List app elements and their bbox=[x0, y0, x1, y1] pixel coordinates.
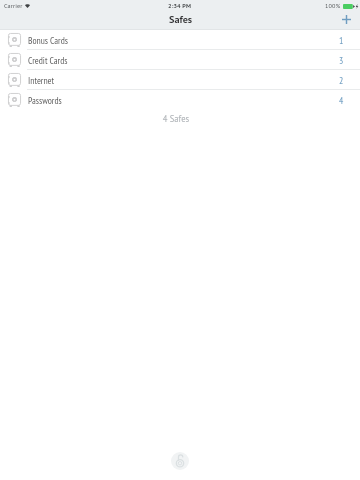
button[interactable]: Credit Cards bbox=[0, 50, 360, 69]
staticText: 4 Safes bbox=[0, 113, 356, 124]
staticText: 3 bbox=[339, 54, 344, 66]
staticText: 1 bbox=[339, 34, 344, 46]
staticText: 2 bbox=[339, 74, 344, 86]
staticText: Passwords bbox=[28, 94, 62, 106]
staticText: Carrier bbox=[4, 2, 23, 10]
staticText: Bonus Cards bbox=[28, 34, 69, 46]
staticText: 4 bbox=[339, 94, 344, 106]
staticText: Safes bbox=[169, 13, 193, 26]
staticText: 100% bbox=[325, 2, 341, 10]
button[interactable]: Internet bbox=[0, 70, 360, 89]
button[interactable]: Add safe bbox=[337, 10, 355, 28]
staticText: Internet bbox=[28, 74, 55, 86]
button[interactable]: Unlock bbox=[171, 452, 189, 470]
staticText: Credit Cards bbox=[28, 54, 68, 66]
button[interactable]: Bonus Cards bbox=[0, 30, 360, 49]
button[interactable]: Passwords bbox=[0, 90, 360, 109]
staticText: 2:34 PM bbox=[168, 2, 192, 10]
